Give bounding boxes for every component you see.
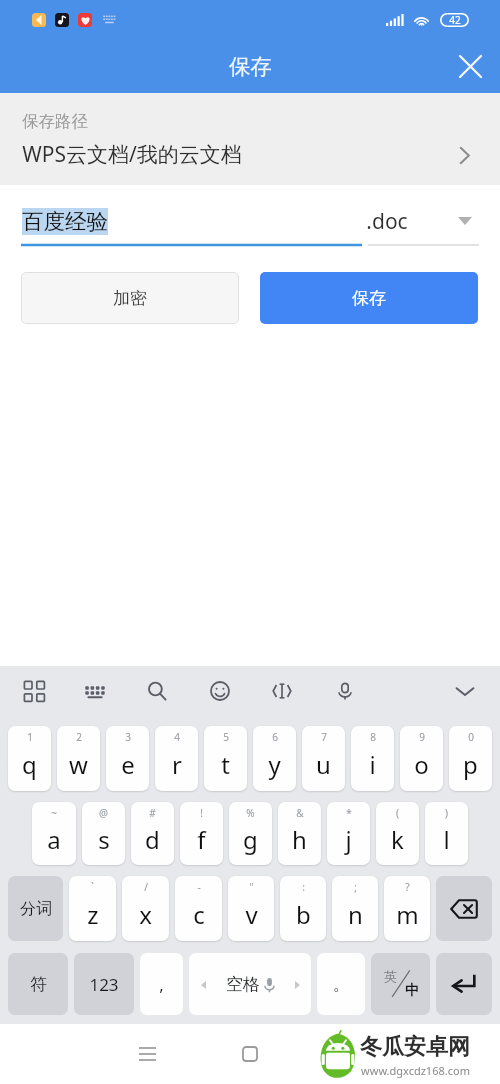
staticText: n [348,898,363,931]
staticText: @ [99,806,108,820]
staticText: 3 [125,730,131,744]
button[interactable]: ) [425,802,468,865]
button[interactable]: Search [138,670,176,712]
button[interactable]: * [327,802,370,865]
staticText: www.dgxcdz168.com [361,1063,470,1078]
button[interactable]: % [229,802,272,865]
button[interactable]: 加密 [21,272,239,324]
staticText: f [197,823,206,856]
staticText: z [87,898,99,931]
staticText: ( [396,806,399,820]
button[interactable]: 空格 [189,953,311,1015]
staticText: 0 [468,730,474,744]
staticText: ! [200,806,203,820]
button[interactable]: 9 [400,726,443,791]
button[interactable]: 。 [317,953,365,1015]
staticText: 8 [370,730,376,744]
staticText: l [443,823,450,856]
staticText: 4 [174,730,180,744]
staticText: & [296,806,304,820]
staticText: 英 [384,968,397,984]
button[interactable]: Voice input [326,670,364,712]
staticText: ; [354,880,357,894]
staticText: e [121,748,135,781]
button[interactable]: @ [82,802,125,865]
button[interactable]: ! [180,802,223,865]
staticText: 9 [419,730,425,744]
button[interactable]: 4 [155,726,198,791]
button[interactable]: 分词 [8,876,63,941]
button[interactable]: ~ [32,802,76,865]
staticText: " [249,880,254,894]
staticText: WPS云文档/我的云文档 [22,140,242,169]
button[interactable]: Backspace [436,876,492,941]
button[interactable]: - [175,876,222,941]
staticText: ? [405,880,410,894]
button[interactable]: # [131,802,174,865]
staticText: ~ [51,806,57,820]
staticText: 中 [405,982,419,1000]
staticText: 2 [76,730,82,744]
staticText: ` [91,880,94,894]
staticText: - [197,880,201,894]
staticText: d [145,823,160,856]
button[interactable]: 符 [8,953,68,1015]
staticText: 1 [27,730,33,744]
button[interactable]: Hide keyboard [446,670,484,712]
button[interactable]: 123 [74,953,134,1015]
button[interactable]: 英 [371,953,430,1015]
staticText: 7 [321,730,327,744]
staticText: : [302,880,305,894]
button[interactable]: Enter [436,953,492,1015]
staticText: v [245,898,258,931]
staticText: / [144,880,148,894]
button[interactable]: 7 [302,726,345,791]
button[interactable]: 3 [106,726,149,791]
button[interactable]: Close [444,40,496,93]
button[interactable]: 5 [204,726,247,791]
staticText: 42 [449,13,461,27]
staticText: 保存路径 [22,111,88,132]
button[interactable]: & [278,802,321,865]
staticText: , [159,973,164,996]
button[interactable]: 保存路径 [0,93,500,185]
staticText: q [22,748,37,781]
staticText: % [246,806,255,820]
staticText: i [369,748,376,781]
staticText: m [396,898,419,931]
staticText: 冬瓜安卓网 [360,1033,470,1061]
staticText: o [414,748,429,781]
button[interactable]: Home [230,1034,270,1074]
staticText: w [69,748,88,781]
staticText: r [172,748,182,781]
staticText: # [149,806,156,820]
staticText: 6 [272,730,278,744]
button[interactable]: / [122,876,169,941]
staticText: k [391,823,404,856]
button[interactable]: " [228,876,274,941]
button[interactable]: Emoji [201,670,239,712]
button[interactable]: ? [384,876,430,941]
button[interactable]: Edit text [263,670,301,712]
button[interactable]: , [140,953,183,1015]
staticText: s [98,823,110,856]
staticText: t [221,748,230,781]
staticText: * [346,806,352,820]
button[interactable]: ; [332,876,378,941]
button[interactable]: Keyboard [76,670,114,712]
button[interactable]: Recents [127,1034,167,1074]
button[interactable]: Keyboard layouts [15,670,53,712]
button[interactable]: ` [69,876,116,941]
button[interactable]: 8 [351,726,394,791]
staticText: u [316,748,331,781]
button[interactable]: : [280,876,326,941]
button[interactable]: 0 [449,726,492,791]
button[interactable]: 6 [253,726,296,791]
button[interactable]: 2 [57,726,100,791]
button[interactable]: 保存 [260,272,478,324]
staticText: 5 [223,730,229,744]
staticText: .doc [366,207,408,236]
button[interactable]: 1 [8,726,51,791]
button[interactable]: ( [376,802,419,865]
staticText: g [243,823,258,856]
